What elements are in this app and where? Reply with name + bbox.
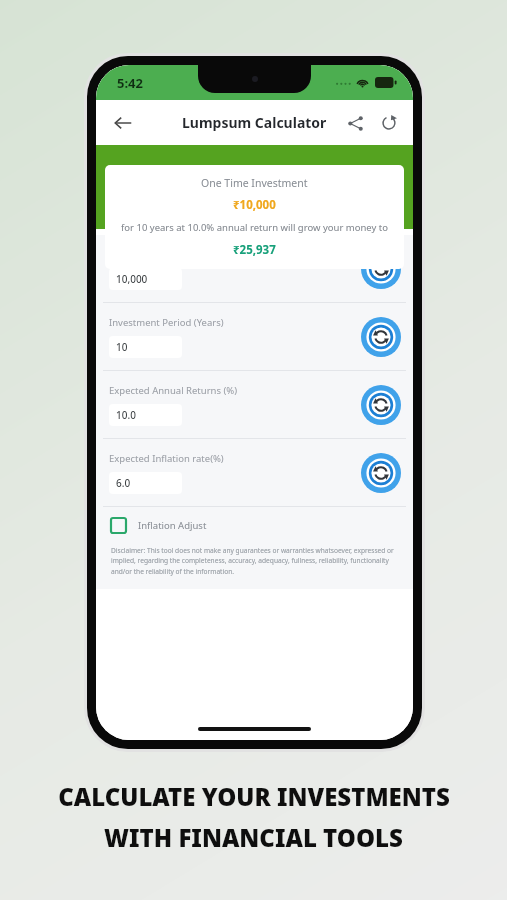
staticText: for 10 years at 10.0% annual return will… xyxy=(121,221,388,234)
button[interactable]: Reset value xyxy=(361,317,401,357)
staticText: Investment Period (Years) xyxy=(109,316,224,329)
button[interactable]: Refresh xyxy=(372,106,406,140)
staticText: 10,000 xyxy=(116,272,148,286)
staticText: ₹25,937 xyxy=(233,242,276,258)
button[interactable]: Reset value xyxy=(361,249,401,289)
staticText: Expected Annual Returns (%) xyxy=(109,384,238,397)
button[interactable]: Reset value xyxy=(361,385,401,425)
button[interactable]: Back xyxy=(105,105,141,141)
staticText: ₹10,000 xyxy=(233,197,276,213)
staticText: Disclaimer: This tool does not make any … xyxy=(111,546,397,576)
staticText: Inflation Adjust xyxy=(138,519,207,532)
button[interactable]: One Time Investment(₹) xyxy=(96,235,413,302)
staticText: CALCULATE YOUR INVESTMENTS xyxy=(58,780,450,813)
button[interactable]: Expected Inflation rate(%) xyxy=(96,439,413,506)
button[interactable]: Expected Annual Returns (%) xyxy=(96,371,413,438)
staticText: 5:42 xyxy=(117,74,143,92)
button[interactable]: Share xyxy=(338,106,372,140)
button[interactable]: Investment Period (Years) xyxy=(96,303,413,370)
staticText: One Time Investment xyxy=(201,176,308,190)
staticText: 10 xyxy=(116,340,128,354)
staticText: Lumpsum Calculator xyxy=(182,113,327,132)
staticText: 6.0 xyxy=(116,476,131,490)
staticText: Expected Inflation rate(%) xyxy=(109,452,224,465)
button[interactable]: Inflation Adjust xyxy=(96,507,413,544)
staticText: 10.0 xyxy=(116,408,136,422)
staticText: WITH FINANCIAL TOOLS xyxy=(104,821,403,854)
button[interactable]: Reset value xyxy=(361,453,401,493)
